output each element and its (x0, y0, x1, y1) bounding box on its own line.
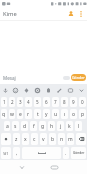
button[interactable]: Hide keyboard (17, 162, 27, 172)
staticText: v (42, 136, 45, 143)
staticText: z (15, 136, 18, 143)
button[interactable]: Text editing (65, 84, 76, 96)
button[interactable]: , (13, 147, 20, 159)
button[interactable]: More options (76, 8, 86, 20)
staticText: k (68, 123, 71, 130)
staticText: f (33, 123, 35, 130)
button[interactable]: y (43, 109, 50, 119)
staticText: p (81, 111, 85, 118)
staticText: . (65, 150, 67, 156)
button[interactable]: Collapse toolbar (76, 84, 87, 96)
button[interactable]: l (75, 121, 82, 131)
staticText: m (68, 136, 73, 143)
staticText: Gönder (73, 151, 85, 155)
button[interactable]: 5 (34, 97, 41, 107)
button[interactable]: t (34, 109, 41, 119)
button[interactable]: Space (22, 147, 61, 159)
staticText: h (50, 123, 54, 130)
staticText: 6 (45, 99, 48, 105)
staticText: !#1 (3, 151, 9, 156)
button[interactable]: q (1, 109, 7, 119)
button[interactable]: g (39, 121, 46, 131)
button[interactable]: n (58, 133, 65, 145)
staticText: b (51, 136, 55, 143)
button[interactable]: r (25, 109, 32, 119)
button[interactable]: Clipboard (43, 84, 54, 96)
staticText: c (33, 136, 36, 143)
staticText: q (2, 111, 6, 118)
staticText: j (60, 123, 62, 130)
button[interactable]: z (13, 133, 20, 145)
button[interactable]: f (30, 121, 37, 131)
button[interactable]: x (22, 133, 29, 145)
staticText: x (24, 136, 27, 143)
staticText: , (16, 150, 18, 156)
button[interactable]: Settings (32, 84, 43, 96)
button[interactable]: d (21, 121, 28, 131)
button[interactable]: e (17, 109, 23, 119)
button[interactable]: 1 (1, 97, 7, 107)
button[interactable]: 4 (25, 97, 32, 107)
button[interactable]: v (40, 133, 47, 145)
button[interactable]: 6 (43, 97, 50, 107)
staticText: Mesaj (3, 75, 16, 81)
button[interactable]: m (67, 133, 74, 145)
staticText: a (6, 123, 9, 130)
button[interactable]: . (63, 147, 69, 159)
staticText: n (60, 136, 64, 143)
button[interactable]: c (31, 133, 38, 145)
staticText: l (78, 123, 80, 130)
staticText: d (23, 123, 27, 130)
staticText: 5 (36, 99, 39, 105)
button[interactable]: Gönder (71, 74, 86, 81)
button[interactable]: Home (47, 162, 61, 172)
staticText: 2 (11, 99, 14, 105)
staticText: g (41, 123, 45, 130)
button[interactable]: k (66, 121, 73, 131)
staticText: 7 (54, 99, 57, 105)
staticText: w (10, 111, 14, 118)
button[interactable]: 9 (70, 97, 77, 107)
button[interactable]: 7 (52, 97, 59, 107)
button[interactable]: u (52, 109, 59, 119)
staticText: e (19, 111, 22, 118)
staticText: r (27, 111, 30, 118)
button[interactable]: 3 (17, 97, 23, 107)
button[interactable]: Voice input (0, 84, 10, 96)
button[interactable]: Attach (62, 74, 71, 82)
staticText: t (37, 111, 39, 118)
button[interactable]: 0 (79, 97, 86, 107)
button[interactable]: Delete (76, 133, 86, 145)
button[interactable]: Add contact (65, 8, 76, 20)
button[interactable]: p (79, 109, 86, 119)
staticText: 1 (3, 99, 6, 105)
staticText: 8 (63, 99, 66, 105)
button[interactable]: a (4, 121, 10, 131)
button[interactable]: 2 (9, 97, 15, 107)
button[interactable]: j (57, 121, 64, 131)
button[interactable]: 8 (61, 97, 68, 107)
staticText: y (45, 111, 48, 118)
staticText: Gönder (72, 75, 85, 80)
button[interactable]: s (12, 121, 19, 131)
staticText: 4 (27, 99, 30, 105)
button[interactable]: Gönder (71, 147, 86, 159)
staticText: 3 (19, 99, 22, 105)
button[interactable]: !#1 (1, 147, 11, 159)
staticText: s (14, 123, 17, 130)
staticText: Kime (3, 10, 17, 18)
staticText: 0 (81, 99, 84, 105)
staticText: 9 (72, 99, 75, 105)
button[interactable]: w (9, 109, 15, 119)
button[interactable]: Theme (21, 84, 32, 96)
button[interactable]: Shift (1, 133, 11, 145)
staticText: o (72, 111, 76, 118)
button[interactable]: Sticker (54, 84, 65, 96)
button[interactable]: b (49, 133, 56, 145)
button[interactable]: ı (61, 109, 68, 119)
button[interactable]: Emoji (10, 84, 21, 96)
staticText: ı (64, 111, 66, 118)
button[interactable]: o (70, 109, 77, 119)
staticText: u (54, 111, 58, 118)
button[interactable]: h (48, 121, 55, 131)
